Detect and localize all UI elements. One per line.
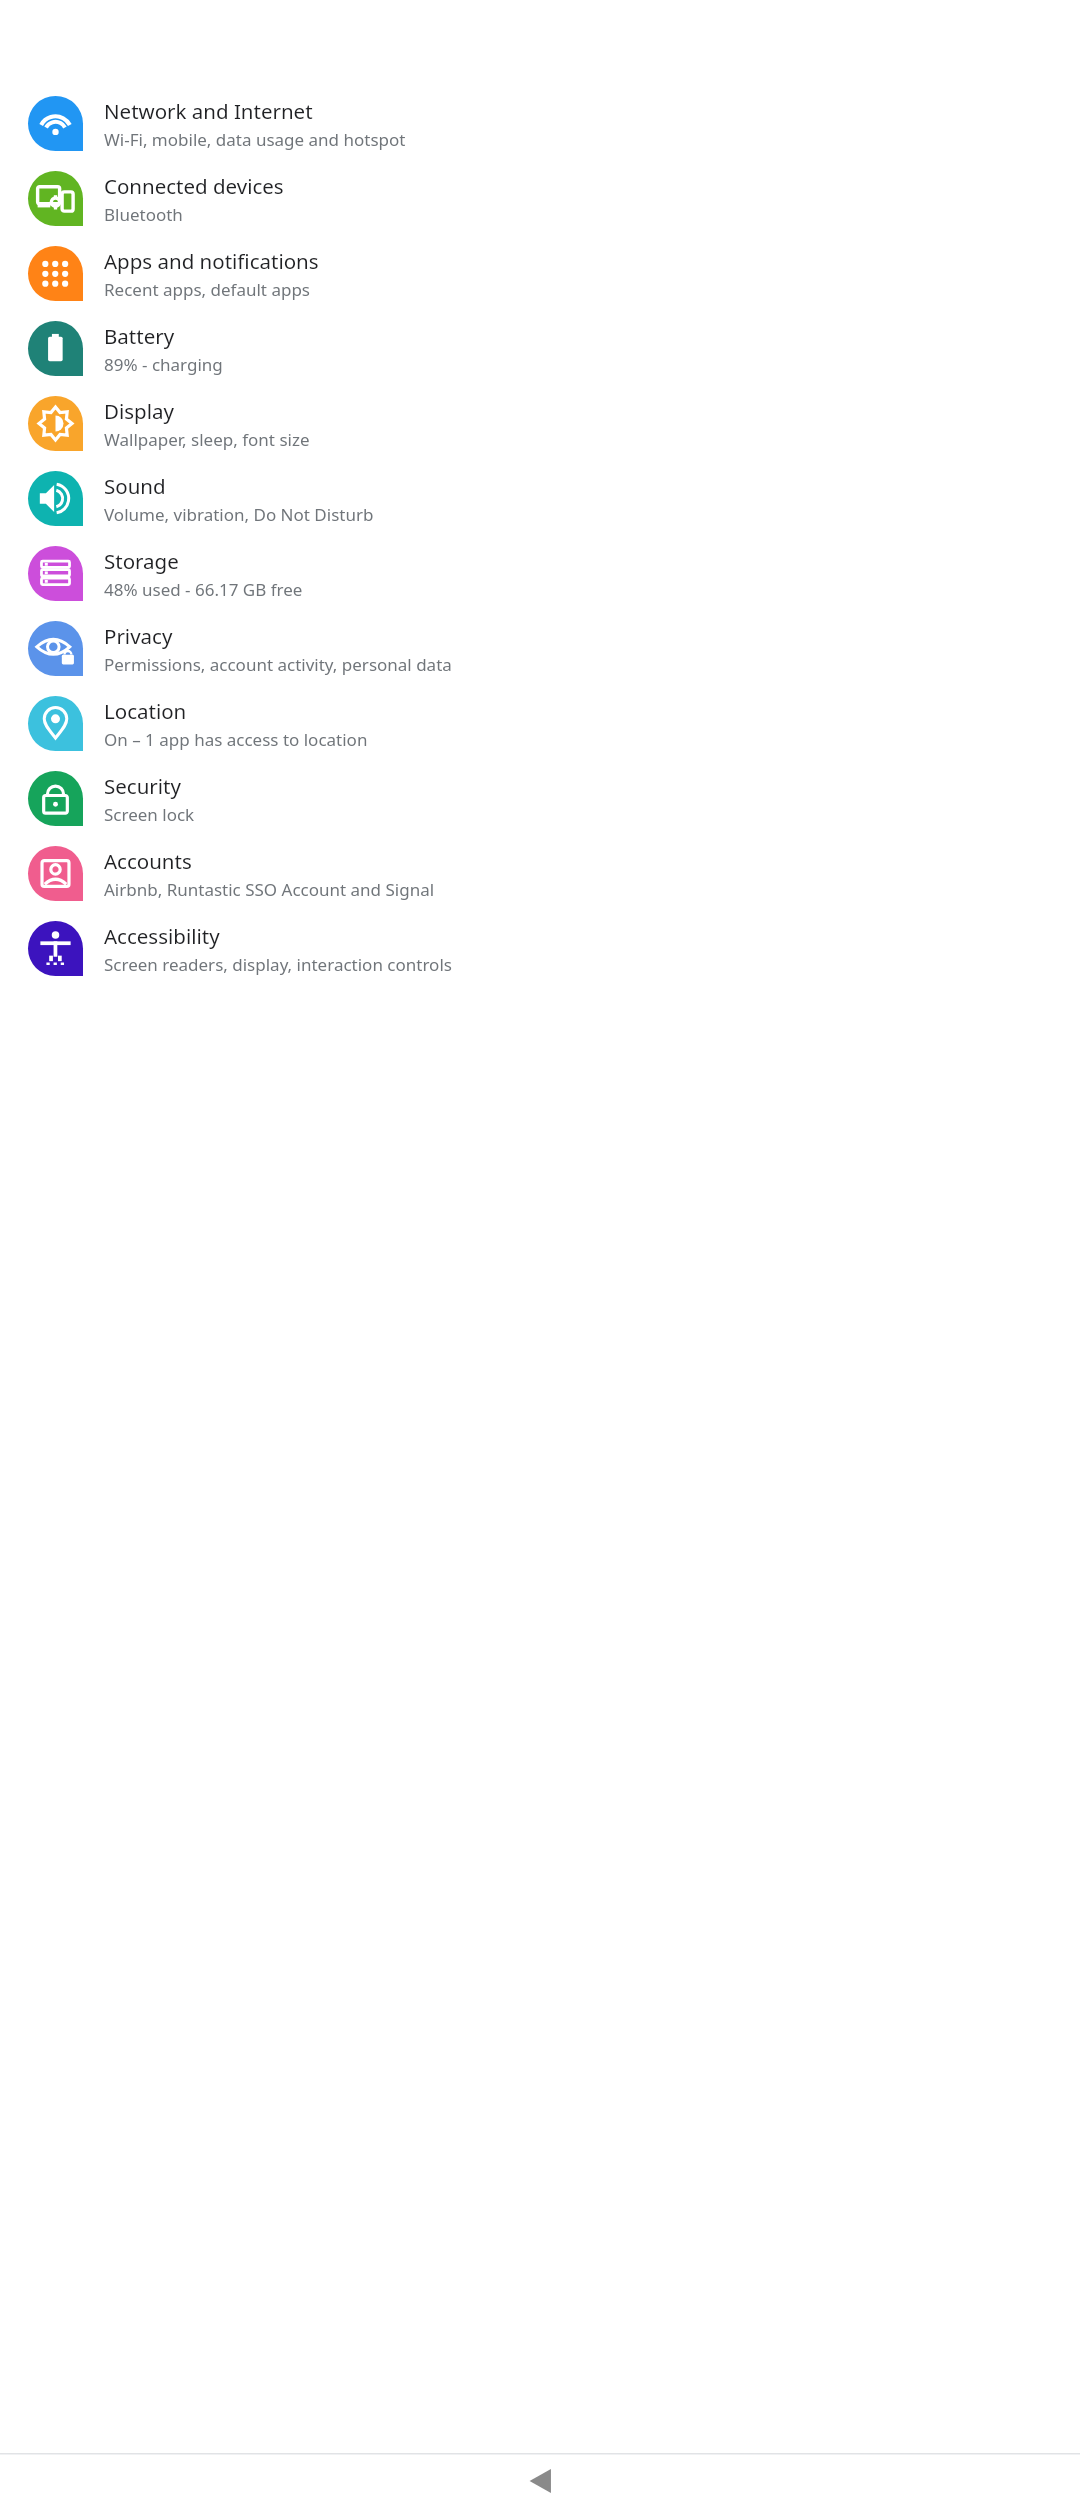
button[interactable]: Storage [0,536,1080,611]
staticText: Apps and notifications [104,247,319,275]
staticText: Connected devices [104,172,284,200]
staticText: Screen lock [104,803,195,826]
staticText: Volume, vibration, Do Not Disturb [104,503,374,526]
staticText: Airbnb, Runtastic SSO Account and Signal [104,878,435,901]
staticText: Accessibility [104,922,220,950]
button[interactable]: Back [523,2464,557,2498]
staticText: Bluetooth [104,203,183,226]
button[interactable]: Battery [0,311,1080,386]
button[interactable]: Accessibility [0,911,1080,986]
button[interactable]: Security [0,761,1080,836]
button[interactable]: Display [0,386,1080,461]
staticText: 48% used - 66.17 GB free [104,578,303,601]
button[interactable]: Privacy [0,611,1080,686]
staticText: Location [104,697,187,725]
staticText: Permissions, account activity, personal … [104,653,452,676]
staticText: Battery [104,322,175,350]
button[interactable]: Accounts [0,836,1080,911]
staticText: 89% - charging [104,353,223,376]
staticText: Network and Internet [104,97,313,125]
button[interactable]: Apps and notifications [0,236,1080,311]
staticText: On – 1 app has access to location [104,728,368,751]
staticText: Wi-Fi, mobile, data usage and hotspot [104,128,406,151]
staticText: Privacy [104,622,173,650]
staticText: Sound [104,472,166,500]
staticText: Recent apps, default apps [104,278,311,301]
staticText: Screen readers, display, interaction con… [104,953,452,976]
button[interactable]: Connected devices [0,161,1080,236]
staticText: Security [104,772,181,800]
staticText: Wallpaper, sleep, font size [104,428,310,451]
button[interactable]: Location [0,686,1080,761]
button[interactable]: Network and Internet [0,86,1080,161]
staticText: Storage [104,547,179,575]
staticText: Display [104,397,174,425]
staticText: Accounts [104,847,192,875]
button[interactable]: Sound [0,461,1080,536]
